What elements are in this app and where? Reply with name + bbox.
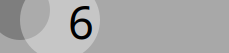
staticText: 6 xyxy=(68,0,94,52)
